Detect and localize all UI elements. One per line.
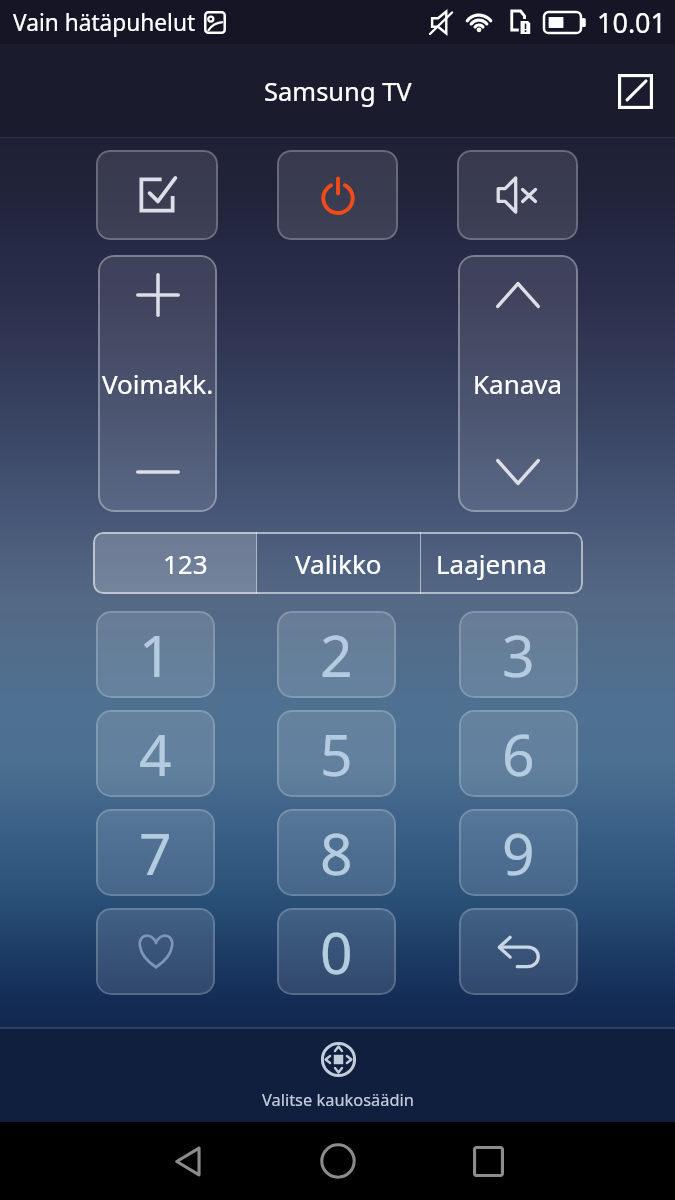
button[interactable]: 1 — [96, 611, 215, 698]
button[interactable]: Channel down — [458, 384, 578, 512]
button[interactable]: 6 — [459, 710, 578, 797]
button[interactable]: 0 — [277, 908, 396, 995]
button[interactable]: Home — [304, 1127, 372, 1195]
staticText: 6 — [502, 715, 535, 793]
button[interactable]: Recents — [454, 1127, 522, 1195]
button[interactable]: Power — [277, 150, 398, 240]
button[interactable]: Laajenna — [421, 532, 583, 594]
staticText: Laajenna — [436, 546, 547, 581]
button[interactable]: 123 — [93, 532, 256, 594]
staticText: Valitse kaukosäädin — [262, 1088, 414, 1110]
staticText: Kanava — [473, 366, 563, 401]
staticText: 4 — [139, 715, 172, 793]
button[interactable]: Edit — [607, 63, 663, 119]
button[interactable]: Volume up — [98, 255, 217, 383]
staticText: 9 — [502, 814, 535, 892]
button[interactable]: Valikko — [257, 532, 420, 594]
button[interactable]: Source — [96, 150, 218, 240]
button[interactable]: Volume down — [98, 384, 217, 512]
staticText: Voimakk. — [102, 366, 214, 401]
staticText: Samsung TV — [264, 74, 412, 109]
button[interactable]: 3 — [459, 611, 578, 698]
staticText: 1 — [139, 616, 172, 694]
button[interactable]: 4 — [96, 710, 215, 797]
button[interactable]: Back — [154, 1127, 222, 1195]
button[interactable]: 9 — [459, 809, 578, 896]
button[interactable]: Mute — [457, 150, 578, 240]
staticText: 8 — [320, 814, 353, 892]
staticText: 123 — [163, 546, 208, 581]
button[interactable]: Valitse kaukosäädin — [262, 1042, 414, 1110]
button[interactable]: 8 — [277, 809, 396, 896]
button[interactable]: Back — [459, 908, 578, 995]
staticText: Vain hätäpuhelut — [13, 7, 196, 38]
staticText: 2 — [320, 616, 353, 694]
staticText: 3 — [502, 616, 535, 694]
button[interactable]: Channel up — [458, 255, 578, 383]
staticText: 5 — [320, 715, 353, 793]
button[interactable]: 2 — [277, 611, 396, 698]
staticText: 7 — [139, 814, 172, 892]
staticText: 0 — [320, 913, 353, 991]
button[interactable]: 5 — [277, 710, 396, 797]
button[interactable]: 7 — [96, 809, 215, 896]
button[interactable]: Favourite — [96, 908, 215, 995]
staticText: 10.01 — [597, 4, 667, 41]
staticText: Valikko — [295, 546, 382, 581]
